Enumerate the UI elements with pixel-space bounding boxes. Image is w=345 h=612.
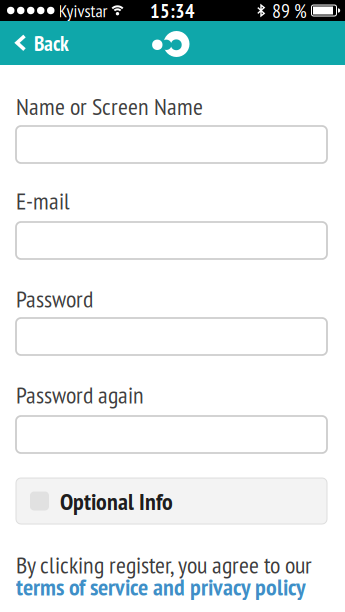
textField[interactable] [16,321,327,352]
staticText: Name or Screen Name [16,90,203,122]
textField[interactable] [16,225,327,256]
staticText: 15:34 [150,0,195,23]
button[interactable]: Optional Info [16,478,327,524]
staticText: Password again [16,379,144,410]
textField[interactable] [16,129,327,160]
textField[interactable] [16,419,327,450]
staticText [16,129,21,160]
button[interactable]: terms of service and privacy policy [16,576,306,596]
staticText [16,321,21,352]
staticText: By clicking register, you agree to our [16,549,312,580]
staticText: E-mail [16,185,70,216]
staticText: Password [16,283,93,314]
staticText: Back [34,29,69,57]
staticText [16,225,21,256]
staticText: terms of service and privacy policy [16,571,306,602]
staticText: Kyivstar [58,0,107,22]
staticText: 89 % [272,0,307,23]
staticText: Optional Info [60,485,173,517]
button[interactable]: Back [0,19,79,67]
staticText [16,419,21,450]
